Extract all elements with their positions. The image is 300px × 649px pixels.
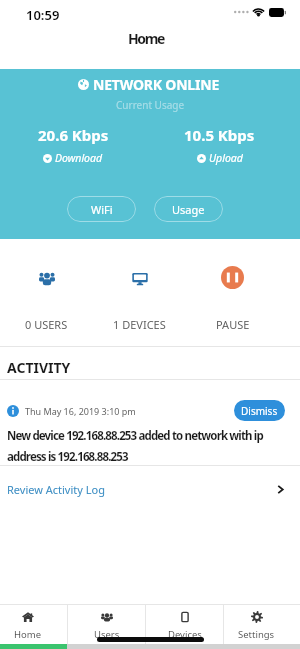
- staticText: Dismiss: [241, 404, 278, 418]
- button[interactable]: 1 DEVICES: [93, 239, 186, 346]
- staticText: PAUSE: [216, 317, 250, 332]
- staticText: Upload: [209, 151, 243, 165]
- button[interactable]: Users: [68, 605, 145, 644]
- staticText: Settings: [238, 628, 275, 641]
- staticText: 1 DEVICES: [113, 317, 166, 332]
- button[interactable]: WiFi: [67, 196, 136, 222]
- staticText: Current Usage: [116, 98, 185, 112]
- staticText: Users: [94, 628, 120, 641]
- staticText: Home: [128, 29, 164, 48]
- staticText: NETWORK ONLINE: [93, 75, 220, 94]
- staticText: Home: [14, 628, 42, 641]
- button[interactable]: 0 USERS: [0, 239, 93, 346]
- staticText: Review Activity Log: [7, 482, 105, 497]
- button[interactable]: Devices: [146, 605, 223, 644]
- staticText: 0 USERS: [25, 317, 68, 332]
- button[interactable]: Settings: [224, 605, 289, 644]
- staticText: Usage: [172, 202, 205, 217]
- staticText: 10:59: [26, 6, 60, 24]
- button[interactable]: Usage: [154, 196, 223, 222]
- staticText: Devices: [168, 628, 202, 641]
- staticText: 20.6 Kbps: [38, 125, 109, 145]
- staticText: ACTIVITY: [7, 358, 71, 377]
- staticText: 10.5 Kbps: [184, 125, 255, 145]
- button[interactable]: PAUSE: [186, 239, 279, 346]
- staticText: New device 192.168.88.253 added to netwo…: [7, 428, 270, 465]
- staticText: Download: [55, 151, 103, 165]
- button[interactable]: Dismiss: [234, 400, 285, 421]
- button[interactable]: Home: [0, 605, 67, 644]
- staticText: WiFi: [91, 202, 113, 217]
- button[interactable]: Review Activity Log: [0, 466, 300, 507]
- staticText: Thu May 16, 2019 3:10 pm: [25, 405, 136, 417]
